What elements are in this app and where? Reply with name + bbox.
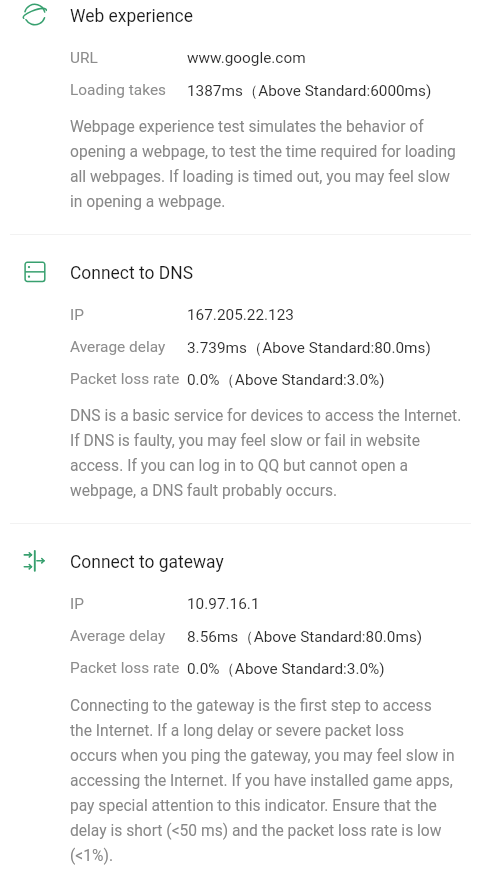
staticText: DNS is a basic service for devices to ac…	[70, 401, 462, 501]
staticText: Packet loss rate	[70, 370, 180, 388]
staticText: 10.97.16.1	[187, 595, 260, 613]
other: Connect to gateway	[21, 549, 49, 577]
staticText: 0.0%（Above Standard:3.0%)	[187, 659, 385, 678]
staticText: 1387ms（Above Standard:6000ms)	[187, 81, 432, 100]
staticText: Connect to gateway	[70, 552, 224, 572]
staticText: IP	[70, 595, 84, 613]
button[interactable]: Connect to DNS	[0, 259, 481, 289]
staticText: Web experience	[70, 6, 193, 26]
staticText: www.google.com	[187, 49, 306, 67]
staticText: IP	[70, 306, 84, 324]
button[interactable]: Connect to gateway	[0, 548, 481, 578]
staticText: Average delay	[70, 338, 166, 356]
staticText: Connect to DNS	[70, 263, 193, 283]
other: Connect to DNS	[21, 260, 49, 288]
staticText: 167.205.22.123	[187, 306, 294, 324]
staticText: Connecting to the gateway is the first s…	[70, 691, 455, 866]
staticText: URL	[70, 49, 98, 67]
staticText: Average delay	[70, 627, 166, 645]
staticText: Webpage experience test simulates the be…	[70, 112, 460, 212]
staticText: Loading takes	[70, 81, 166, 99]
staticText: 8.56ms（Above Standard:80.0ms)	[187, 627, 423, 646]
other: Web experience	[21, 3, 49, 31]
staticText: 3.739ms（Above Standard:80.0ms)	[187, 338, 431, 357]
staticText: 0.0%（Above Standard:3.0%)	[187, 370, 385, 389]
staticText: Packet loss rate	[70, 659, 180, 677]
button[interactable]: Web experience	[0, 2, 481, 32]
